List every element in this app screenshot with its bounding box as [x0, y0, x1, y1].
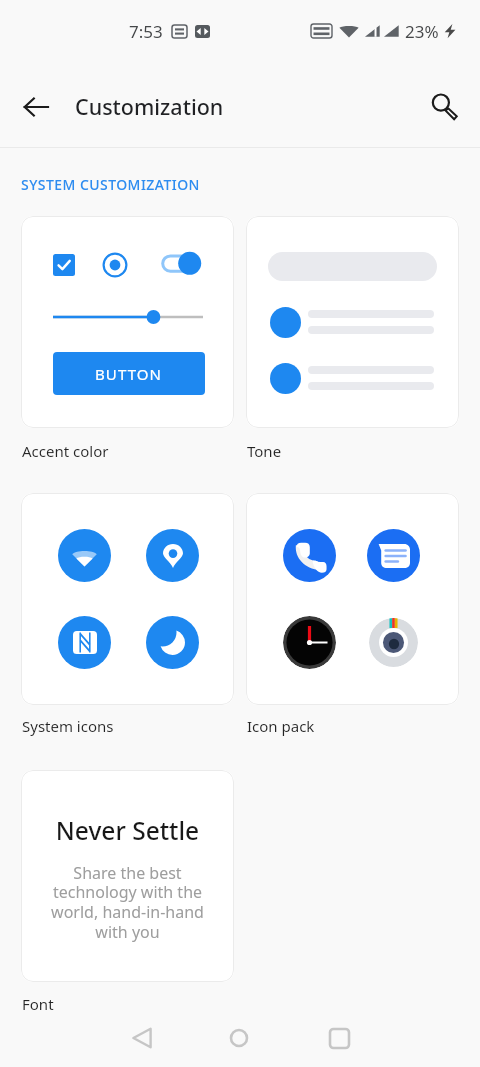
staticText: 23% — [405, 20, 439, 43]
button[interactable]: Phone — [246, 493, 459, 705]
button[interactable]: Back — [12, 83, 60, 131]
button[interactable]: Checkbox — [53, 254, 75, 276]
button[interactable]: Switch — [159, 247, 207, 277]
staticText: System icons — [22, 716, 114, 736]
staticText: Icon pack — [247, 716, 315, 736]
button[interactable]: Messages — [367, 529, 420, 582]
staticText: Font — [22, 994, 54, 1014]
button[interactable]: Icon — [146, 529, 199, 582]
button[interactable]: Back — [118, 1014, 166, 1062]
staticText: SYSTEM CUSTOMIZATION — [21, 175, 200, 194]
button[interactable]: Never Settle — [21, 770, 234, 982]
staticText: Customization — [75, 92, 224, 121]
button[interactable]: Icon — [58, 529, 111, 582]
button[interactable]: Camera — [369, 618, 418, 667]
button[interactable]: Icon — [146, 616, 199, 669]
staticText: BUTTON — [95, 364, 163, 384]
button[interactable]: Icon — [21, 493, 234, 705]
staticText: Accent color — [22, 441, 109, 461]
button[interactable]: BUTTON — [53, 352, 205, 395]
button[interactable]: Clock — [283, 616, 336, 669]
staticText: 7:53 — [129, 20, 163, 43]
button[interactable]: Recent apps — [315, 1014, 363, 1062]
button[interactable]: Home — [215, 1014, 263, 1062]
staticText: Share the best technology with the world… — [50, 862, 205, 943]
staticText: Tone — [247, 441, 282, 461]
button[interactable]: Search — [420, 83, 468, 131]
button[interactable]: Radio button — [102, 252, 128, 278]
button[interactable]: Checkbox — [21, 216, 234, 428]
button[interactable] — [246, 216, 459, 428]
button[interactable]: Icon — [58, 616, 111, 669]
staticText: Never Settle — [21, 814, 234, 847]
button[interactable]: Phone — [283, 529, 336, 582]
